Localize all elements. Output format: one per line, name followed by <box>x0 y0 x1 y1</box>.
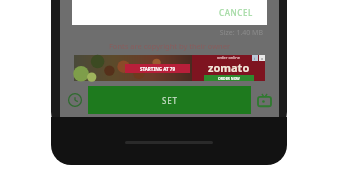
staticText: order online <box>217 55 241 60</box>
staticText: SET <box>162 95 178 106</box>
staticText: ORDER NOW <box>218 76 240 81</box>
button[interactable]: STARTING AT 79 <box>74 55 265 81</box>
staticText: Fonts are copyright by their owner <box>60 41 279 51</box>
button[interactable]: CANCEL <box>213 4 259 21</box>
staticText: x <box>261 56 264 61</box>
button[interactable]: Ad info <box>252 55 258 61</box>
button[interactable]: SET <box>88 86 251 114</box>
staticText: zomato <box>208 60 250 75</box>
staticText: i <box>254 56 256 61</box>
staticText: STARTING AT 79 <box>140 66 175 72</box>
staticText: CANCEL <box>219 7 253 18</box>
button[interactable]: Recent <box>64 89 86 111</box>
button[interactable]: Close ad <box>259 55 265 61</box>
staticText: Size: 1.40 MB <box>60 28 263 38</box>
button[interactable]: Preview <box>253 89 275 111</box>
